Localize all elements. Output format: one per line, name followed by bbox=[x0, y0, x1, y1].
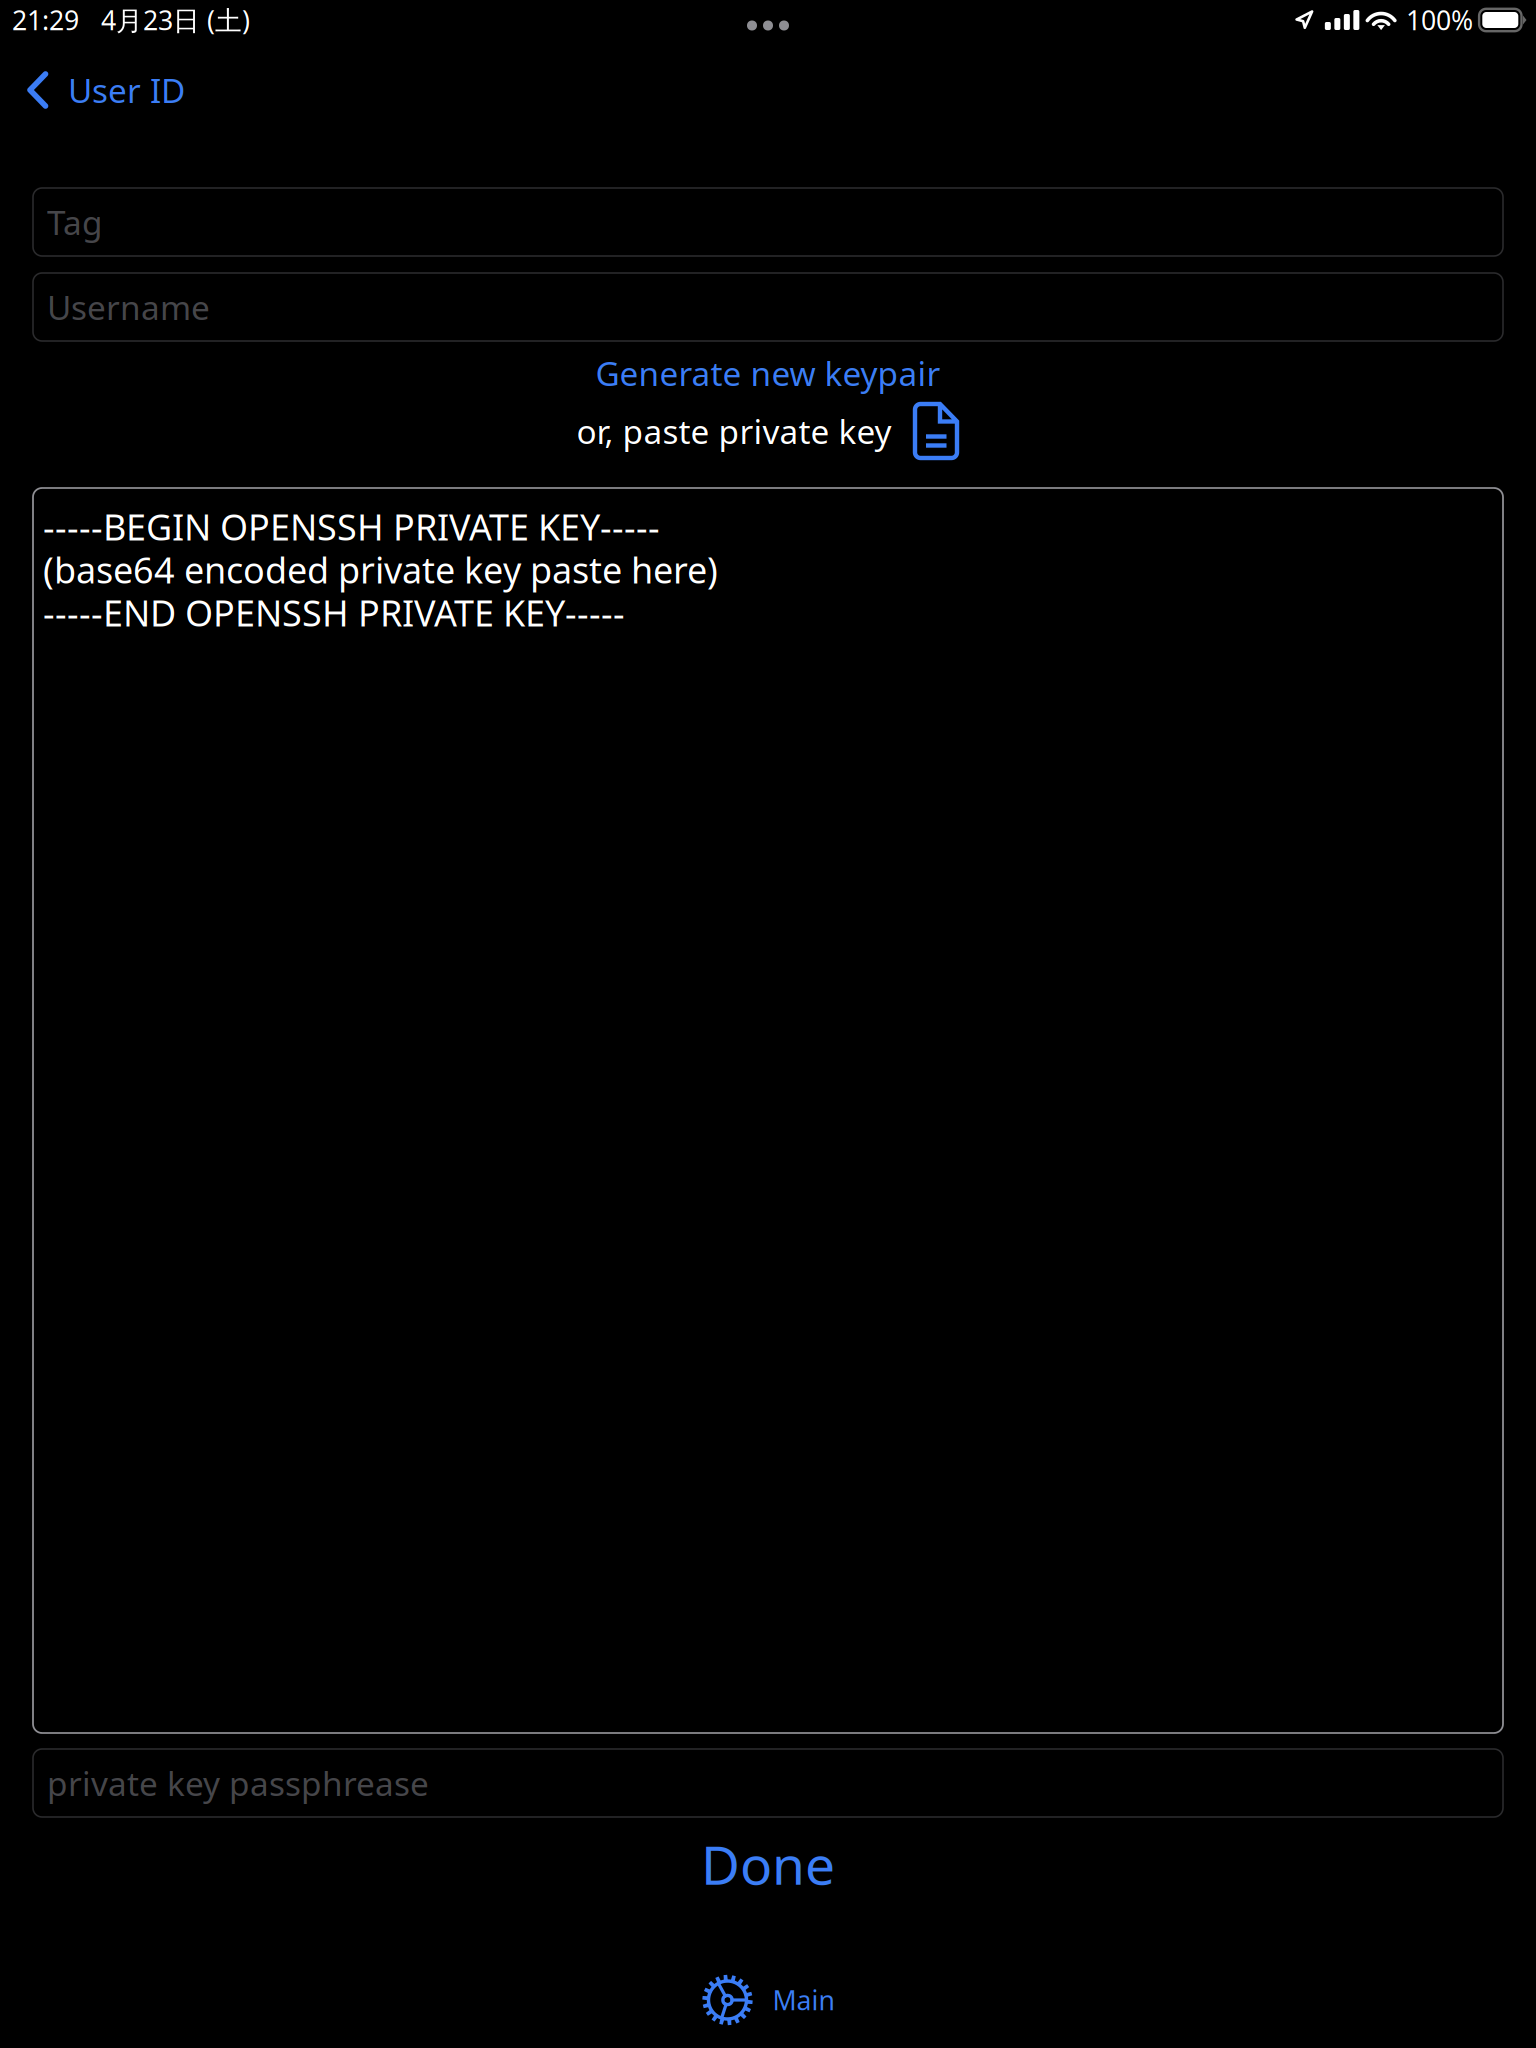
button[interactable]: User ID bbox=[0, 60, 207, 120]
staticText: Main bbox=[772, 1982, 834, 2018]
button[interactable]: private key passphrease bbox=[33, 1749, 1503, 1817]
staticText: 100% bbox=[1406, 2, 1473, 38]
button[interactable]: -----BEGIN OPENSSH PRIVATE KEY----- bbox=[33, 488, 1503, 1733]
staticText: 21:29 bbox=[12, 2, 79, 38]
button[interactable]: Paste private key bbox=[912, 401, 959, 460]
staticText: (base64 encoded private key paste here) bbox=[43, 546, 718, 593]
staticText: private key passphrease bbox=[47, 1761, 429, 1805]
staticText: Generate new keypair bbox=[595, 351, 940, 395]
staticText: User ID bbox=[68, 68, 185, 112]
staticText: or, paste private key bbox=[576, 409, 891, 453]
staticText: Done bbox=[701, 1829, 835, 1899]
staticText: 4月23日 (土) bbox=[101, 2, 250, 38]
button[interactable]: Generate new keypair bbox=[595, 350, 940, 396]
button[interactable]: Main bbox=[701, 1968, 834, 2032]
staticText: -----BEGIN OPENSSH PRIVATE KEY----- bbox=[43, 503, 660, 550]
staticText: -----END OPENSSH PRIVATE KEY----- bbox=[43, 589, 625, 636]
button[interactable]: Tag bbox=[33, 188, 1503, 256]
staticText: Tag bbox=[47, 200, 103, 244]
staticText: Username bbox=[47, 285, 210, 329]
button[interactable]: Done bbox=[701, 1817, 835, 1906]
button[interactable]: Username bbox=[33, 273, 1503, 341]
